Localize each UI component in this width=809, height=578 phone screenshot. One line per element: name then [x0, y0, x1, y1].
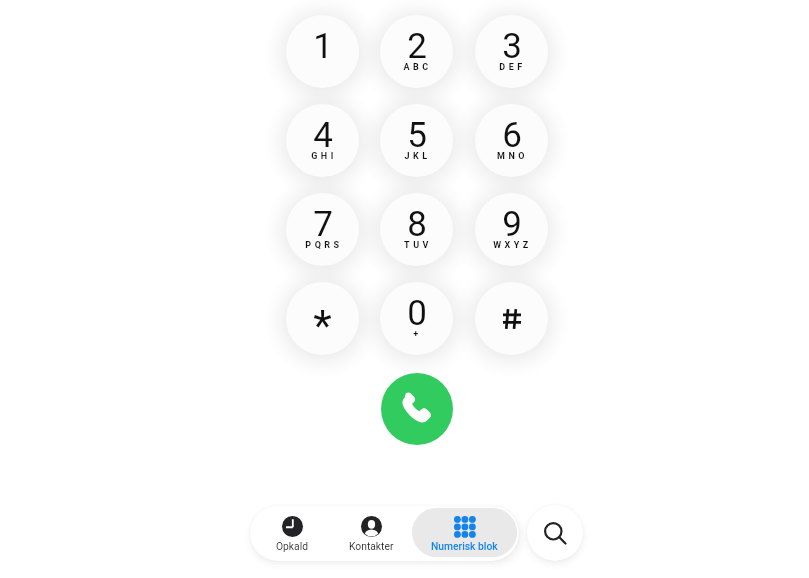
staticText: ABC: [403, 62, 432, 73]
button[interactable]: 5: [380, 104, 453, 177]
staticText: 2: [407, 26, 427, 67]
button[interactable]: 1: [286, 15, 359, 88]
staticText: Kontakter: [349, 540, 394, 552]
staticText: 0: [407, 293, 427, 334]
button[interactable]: 6: [475, 104, 548, 177]
button[interactable]: 8: [380, 193, 453, 266]
button[interactable]: 3: [475, 15, 548, 88]
staticText: 7: [313, 204, 333, 245]
staticText: WXYZ: [493, 240, 532, 251]
staticText: MNO: [497, 151, 528, 162]
staticText: 8: [407, 204, 427, 245]
button[interactable]: Search: [527, 505, 583, 561]
button[interactable]: 7: [286, 193, 359, 266]
staticText: GHI: [311, 151, 337, 162]
button[interactable]: Call: [381, 373, 453, 445]
button[interactable]: Numerisk blok: [412, 508, 517, 557]
staticText: +: [413, 329, 422, 340]
staticText: 9: [502, 204, 522, 245]
staticText: PQRS: [305, 240, 343, 251]
button[interactable]: Kontakter: [331, 508, 411, 557]
button[interactable]: 2: [380, 15, 453, 88]
button[interactable]: 9: [475, 193, 548, 266]
button[interactable]: [475, 282, 548, 355]
staticText: JKL: [404, 151, 431, 162]
button[interactable]: 4: [286, 104, 359, 177]
staticText: 4: [313, 115, 333, 156]
staticText: 1: [313, 26, 333, 67]
staticText: Opkald: [276, 540, 308, 552]
staticText: 5: [407, 115, 427, 156]
staticText: TUV: [404, 240, 432, 251]
button[interactable]: *: [286, 282, 359, 355]
button[interactable]: 0: [380, 282, 453, 355]
staticText: DEF: [499, 62, 526, 73]
staticText: *: [313, 300, 332, 350]
staticText: Numerisk blok: [431, 540, 498, 552]
staticText: 3: [502, 26, 522, 67]
staticText: 6: [502, 115, 522, 156]
button[interactable]: Opkald: [252, 508, 332, 557]
